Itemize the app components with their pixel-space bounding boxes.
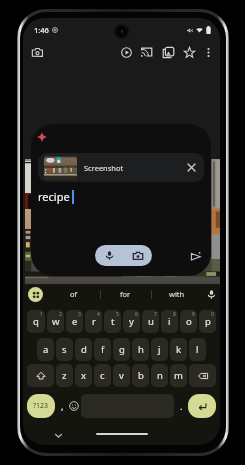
staticText: 6 [135, 311, 138, 318]
staticText: z [62, 369, 67, 382]
button[interactable]: o [180, 310, 197, 333]
staticText: v [119, 369, 124, 382]
button[interactable]: i [161, 310, 178, 333]
button[interactable]: ?123 [27, 394, 55, 418]
staticText: w [52, 315, 60, 328]
staticText: k [176, 343, 182, 356]
staticText: s [62, 343, 67, 356]
button[interactable]: j [151, 338, 168, 361]
staticText: 7 [154, 311, 157, 318]
staticText: x [81, 369, 87, 382]
button[interactable]: Screenshot [38, 153, 204, 182]
staticText: . [180, 400, 183, 413]
button[interactable]: Remove screenshot [184, 160, 199, 175]
staticText: u [148, 315, 154, 328]
button[interactable]: m [170, 364, 187, 387]
staticText: with [169, 289, 185, 299]
staticText: , [61, 400, 64, 413]
staticText: a [43, 343, 49, 356]
staticText: l [196, 343, 199, 356]
button[interactable]: Favorite [180, 43, 198, 61]
staticText: 4 [97, 311, 100, 318]
staticText: 8 [173, 311, 176, 318]
button[interactable]: of [48, 285, 100, 303]
button[interactable]: v [113, 364, 130, 387]
button[interactable]: r [85, 310, 102, 333]
button[interactable]: g [113, 338, 130, 361]
staticText: p [205, 315, 211, 328]
button[interactable]: e [66, 310, 83, 333]
staticText: 1 [40, 311, 43, 318]
button[interactable]: n [151, 364, 168, 387]
button[interactable]: b [132, 364, 149, 387]
button[interactable]: Play [117, 43, 135, 61]
staticText: q [33, 315, 39, 328]
button[interactable]: Emoji [69, 394, 79, 418]
button[interactable]: Shift [27, 364, 54, 387]
button[interactable]: , [57, 394, 67, 418]
button[interactable]: s [56, 338, 73, 361]
button[interactable]: x [75, 364, 92, 387]
button[interactable]: t [104, 310, 121, 333]
staticText: j [158, 343, 161, 356]
button[interactable]: c [94, 364, 111, 387]
staticText: o [186, 315, 192, 328]
staticText: f [101, 343, 105, 356]
staticText: of [70, 289, 78, 299]
staticText: g [119, 343, 125, 356]
staticText: y [129, 315, 134, 328]
staticText: 3 [78, 311, 81, 318]
staticText: 0 [211, 311, 214, 318]
staticText: for [120, 289, 131, 299]
staticText: 1:46 [34, 25, 49, 35]
staticText: 5 [116, 311, 119, 318]
button[interactable]: u [142, 310, 159, 333]
staticText: d [81, 343, 87, 356]
button[interactable]: p [199, 310, 216, 333]
button[interactable]: Voice typing [202, 285, 220, 303]
button[interactable]: Library [159, 43, 177, 61]
button[interactable]: Camera input [123, 245, 152, 266]
staticText: t [111, 315, 115, 328]
button[interactable]: q [27, 310, 45, 333]
button[interactable]: for [100, 285, 151, 303]
button[interactable]: a [37, 338, 54, 361]
button[interactable]: with [151, 285, 202, 303]
button[interactable]: . [176, 394, 186, 418]
staticText: h [138, 343, 144, 356]
staticText: recipe [38, 189, 70, 204]
button[interactable]: Send [185, 245, 206, 266]
button[interactable]: Voice input [95, 245, 123, 266]
staticText: e [72, 315, 78, 328]
staticText: ?123 [33, 401, 49, 411]
button[interactable]: z [56, 364, 73, 387]
button[interactable] [23, 285, 48, 303]
staticText: 9 [192, 311, 195, 318]
staticText: m [174, 369, 183, 382]
button[interactable]: d [75, 338, 92, 361]
button[interactable]: w [47, 310, 64, 333]
staticText: 2 [59, 311, 62, 318]
staticText: r [92, 315, 96, 328]
staticText: n [157, 369, 163, 382]
staticText: c [100, 369, 105, 382]
button[interactable]: h [132, 338, 149, 361]
staticText: Screenshot [84, 163, 124, 173]
button[interactable]: y [123, 310, 140, 333]
button[interactable]: Cast [137, 43, 155, 61]
button[interactable]: More options [199, 43, 217, 61]
button[interactable]: Hide keyboard [51, 428, 65, 442]
button[interactable]: Screenshot [27, 42, 47, 62]
button[interactable]: f [94, 338, 111, 361]
staticText: b [138, 369, 144, 382]
button[interactable]: k [170, 338, 187, 361]
button[interactable]: Backspace [189, 364, 216, 387]
button[interactable]: Enter [188, 394, 216, 418]
button[interactable]: l [189, 338, 206, 361]
staticText: i [168, 315, 171, 328]
